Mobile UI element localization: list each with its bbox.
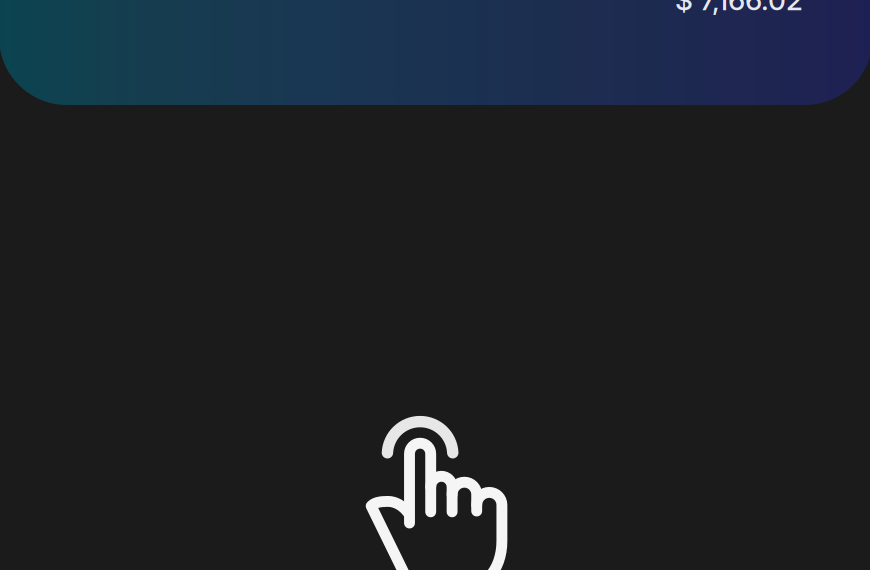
staticText: $ 7,166.02 (675, 0, 803, 17)
button[interactable]: $ 7,166.02 (0, 0, 870, 105)
